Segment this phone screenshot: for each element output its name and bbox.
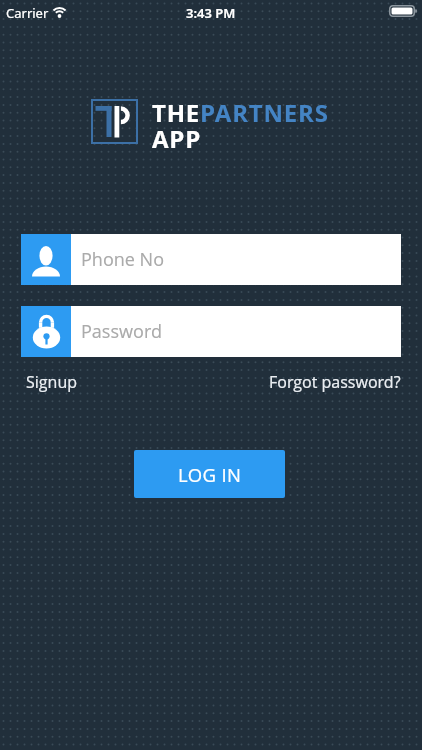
button[interactable]: LOG IN [134,450,285,498]
staticText: LOG IN [178,462,242,487]
staticText: Password [81,319,162,344]
staticText: 3:43 PM [186,4,236,22]
staticText: Phone No [81,247,165,272]
button[interactable]: Phone No [21,234,401,285]
staticText: Carrier [6,4,49,22]
button[interactable]: Forgot password? [269,371,401,393]
staticText: THEPARTNERS APP [152,96,329,155]
button[interactable]: Signup [26,371,78,393]
button[interactable]: Password [21,306,401,357]
